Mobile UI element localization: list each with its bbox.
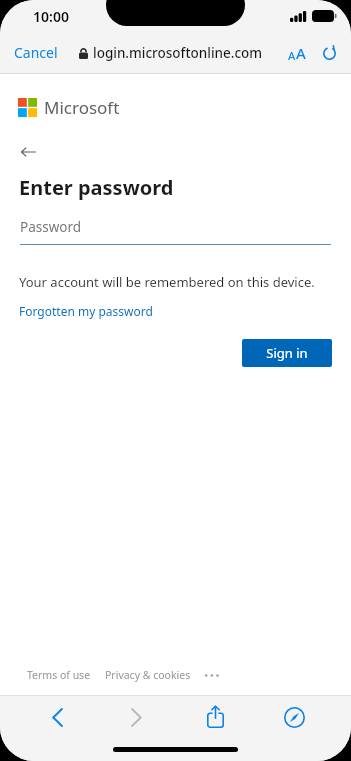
button[interactable]: Forward [114, 695, 158, 739]
staticText: Enter password [19, 174, 174, 201]
staticText: A [296, 43, 306, 63]
button[interactable]: Password [20, 218, 331, 245]
staticText: login.microsoftonline.com [93, 44, 263, 62]
button[interactable]: Cancel [8, 39, 64, 66]
staticText: 10:00 [33, 7, 69, 26]
staticText: Microsoft [44, 96, 120, 119]
button[interactable]: Sign in [242, 339, 332, 367]
button[interactable]: Text size [285, 40, 309, 66]
staticText: Terms of use [27, 668, 91, 682]
button[interactable]: Forgotten my password [19, 303, 153, 319]
button[interactable]: More options [203, 667, 225, 683]
staticText: Forgotten my password [19, 303, 153, 319]
button[interactable]: Reload [317, 41, 341, 65]
staticText: Your account will be remembered on this … [19, 273, 315, 291]
button[interactable]: Back [35, 695, 79, 739]
button[interactable]: Tabs [272, 695, 316, 739]
staticText: Password [20, 218, 82, 236]
button[interactable]: Terms of use [27, 668, 91, 682]
staticText: Privacy & cookies [105, 668, 191, 682]
staticText: Sign in [266, 344, 308, 362]
staticText: A [288, 48, 296, 63]
button[interactable]: Back [14, 138, 42, 166]
button[interactable]: Privacy & cookies [105, 668, 191, 682]
button[interactable]: Share [193, 695, 237, 739]
staticText: Cancel [14, 43, 58, 62]
